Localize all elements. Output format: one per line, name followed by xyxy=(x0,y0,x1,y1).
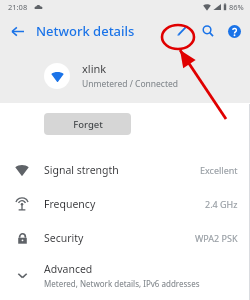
staticText: Signal strength xyxy=(44,163,119,177)
staticText: Network details xyxy=(36,22,135,40)
staticText: Metered, Network details, IPv6 addresses xyxy=(44,278,200,289)
button[interactable]: Help xyxy=(221,18,247,44)
staticText: 2.4 GHz xyxy=(205,198,238,210)
button[interactable]: Signal strength xyxy=(0,153,250,187)
button[interactable]: Search xyxy=(195,18,221,44)
button[interactable]: Frequency xyxy=(0,187,250,221)
staticText: 86% xyxy=(229,2,244,12)
button[interactable]: Forget xyxy=(44,113,131,135)
staticText: WPA2 PSK xyxy=(195,232,238,244)
staticText: Excellent xyxy=(200,164,238,176)
staticText: Unmetered / Connected xyxy=(82,78,179,90)
staticText: Advanced xyxy=(44,262,93,276)
button[interactable]: Back xyxy=(4,18,30,44)
button[interactable]: Edit xyxy=(169,18,195,44)
button[interactable]: Security xyxy=(0,221,250,255)
staticText: xlink xyxy=(82,61,107,76)
button[interactable]: Advanced xyxy=(0,255,250,295)
staticText: 21:08 xyxy=(8,2,28,12)
staticText: Forget xyxy=(73,118,103,131)
staticText: Frequency xyxy=(44,197,96,211)
staticText: Security xyxy=(44,231,84,245)
